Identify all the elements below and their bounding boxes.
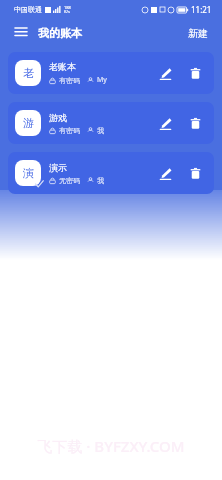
- staticText: 有密码: [59, 76, 80, 85]
- staticText: 演: [23, 166, 34, 180]
- staticText: 我: [97, 126, 104, 135]
- button[interactable]: 老: [8, 52, 214, 94]
- staticText: 老账本: [49, 61, 76, 72]
- button[interactable]: Edit: [153, 111, 177, 135]
- staticText: 飞下载 · BYFZXY.COM: [37, 436, 185, 456]
- staticText: 我的账本: [38, 26, 82, 40]
- button[interactable]: 新建: [184, 23, 212, 44]
- button[interactable]: Delete: [183, 161, 207, 185]
- button[interactable]: Edit: [153, 161, 177, 185]
- staticText: 我: [97, 176, 104, 185]
- staticText: 中国联通: [14, 5, 42, 14]
- staticText: 188 K/s: [64, 5, 71, 14]
- button[interactable]: Delete: [183, 61, 207, 85]
- staticText: 无密码: [59, 176, 80, 185]
- staticText: 游戏: [49, 112, 67, 123]
- button[interactable]: Edit: [153, 61, 177, 85]
- button[interactable]: Menu: [10, 22, 32, 44]
- staticText: 新建: [188, 27, 208, 40]
- staticText: My: [97, 75, 107, 85]
- staticText: 11:21: [191, 4, 212, 15]
- button[interactable]: 游: [8, 102, 214, 144]
- staticText: 老: [23, 66, 34, 80]
- button[interactable]: 演: [8, 152, 214, 194]
- staticText: 演示: [49, 162, 67, 173]
- button[interactable]: Delete: [183, 111, 207, 135]
- staticText: 有密码: [59, 126, 80, 135]
- staticText: 游: [23, 116, 34, 130]
